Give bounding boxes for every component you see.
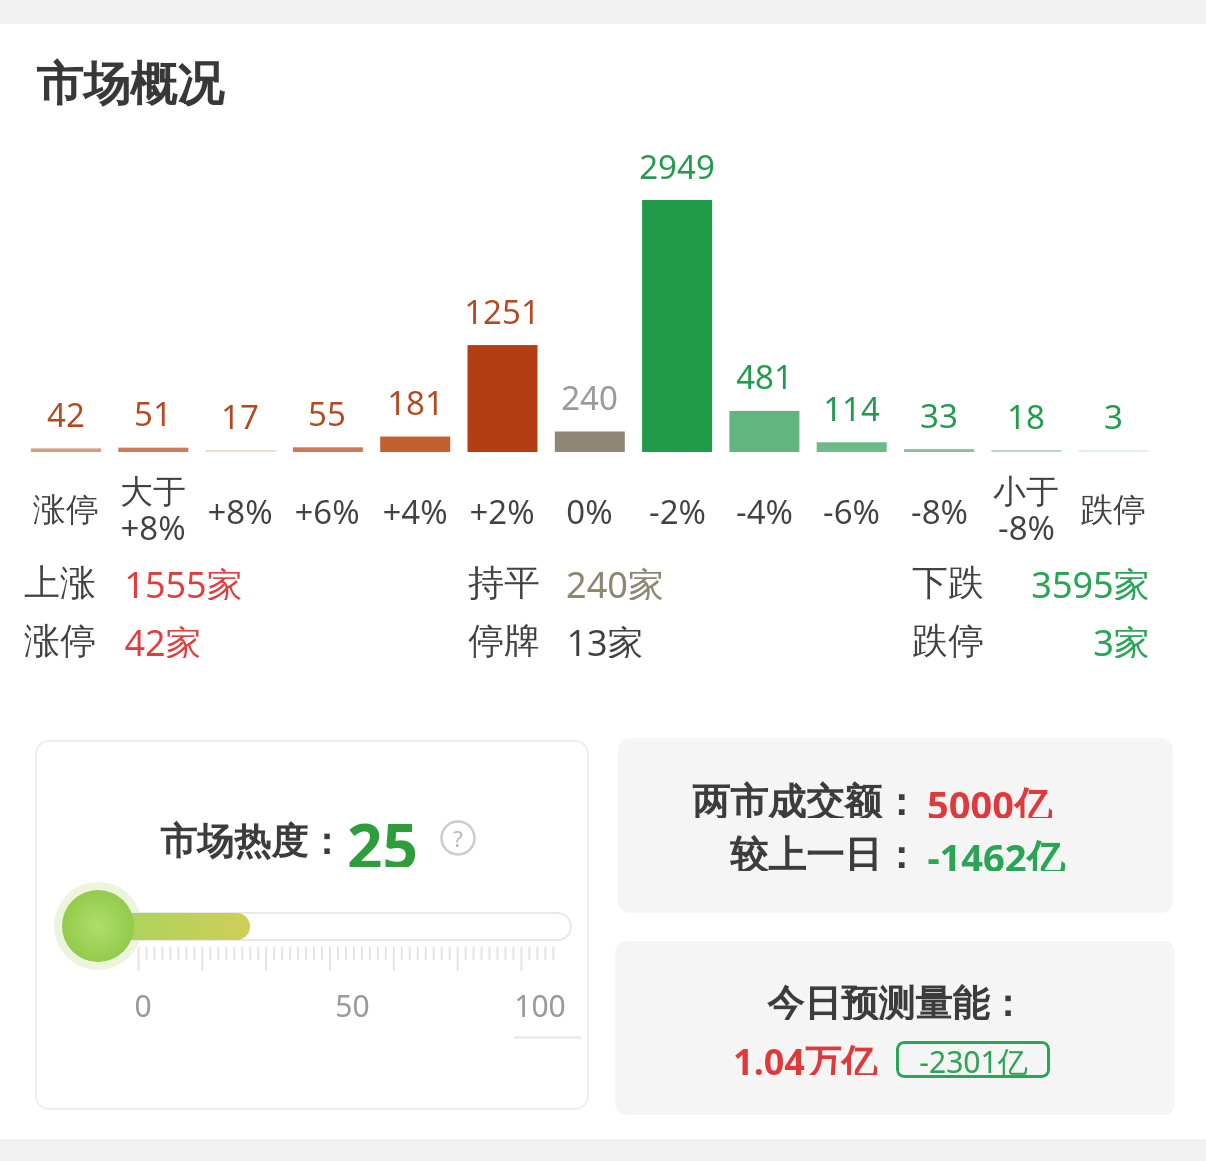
staticText: -8% bbox=[998, 505, 1055, 545]
staticText: 5000亿 bbox=[927, 778, 1052, 818]
staticText: 181 bbox=[387, 380, 444, 416]
staticText: 13家 bbox=[566, 618, 644, 658]
staticText: 跌停 bbox=[912, 618, 984, 658]
staticText: +8% bbox=[120, 505, 186, 545]
staticText: -8% bbox=[911, 489, 968, 529]
staticText: +8% bbox=[207, 489, 273, 529]
staticText: 51 bbox=[134, 391, 172, 427]
button[interactable]: -2301亿 bbox=[896, 1041, 1050, 1078]
staticText: 1251 bbox=[464, 289, 540, 325]
staticText: 240家 bbox=[566, 560, 664, 600]
staticText: 今日预测量能： bbox=[767, 980, 1026, 1020]
staticText: 涨停 bbox=[33, 489, 99, 529]
button[interactable] bbox=[615, 941, 1175, 1115]
staticText: 481 bbox=[736, 354, 793, 390]
staticText: 25 bbox=[347, 803, 418, 867]
staticText: 100 bbox=[514, 985, 566, 1023]
staticText: 42家 bbox=[124, 618, 202, 658]
staticText: 0% bbox=[566, 489, 613, 529]
staticText: +6% bbox=[294, 489, 360, 529]
button[interactable]: ? bbox=[440, 820, 476, 856]
staticText: +4% bbox=[382, 489, 448, 529]
staticText: 下跌 bbox=[912, 560, 984, 600]
staticText: -6% bbox=[823, 489, 880, 529]
staticText: 55 bbox=[308, 391, 346, 427]
staticText: 小于 bbox=[993, 471, 1059, 511]
staticText: 42 bbox=[47, 392, 85, 428]
staticText: -2301亿 bbox=[919, 1041, 1028, 1078]
staticText: 持平 bbox=[468, 560, 540, 600]
staticText: 大于 bbox=[120, 471, 186, 511]
staticText: 两市成交额： bbox=[692, 778, 920, 818]
staticText: 0 bbox=[134, 985, 152, 1023]
staticText: 上涨 bbox=[24, 560, 96, 600]
staticText: -1462亿 bbox=[927, 831, 1065, 871]
staticText: 1.04万亿 bbox=[733, 1037, 877, 1075]
staticText: 240 bbox=[561, 375, 618, 411]
staticText: 1555家 bbox=[124, 560, 243, 600]
staticText: -4% bbox=[736, 489, 793, 529]
staticText: 涨停 bbox=[24, 618, 96, 658]
staticText: ? bbox=[453, 823, 463, 853]
staticText: 17 bbox=[221, 394, 259, 430]
staticText: 停牌 bbox=[468, 618, 540, 658]
staticText: 3 bbox=[1104, 394, 1123, 430]
staticText: 市场概况 bbox=[36, 55, 224, 114]
staticText: 114 bbox=[823, 386, 880, 422]
staticText: 跌停 bbox=[1080, 489, 1146, 529]
staticText: 较上一日： bbox=[730, 831, 920, 871]
staticText: 市场热度： bbox=[160, 818, 345, 862]
staticText: 3595家 bbox=[1031, 560, 1150, 600]
staticText: 3家 bbox=[1093, 618, 1150, 658]
button[interactable] bbox=[35, 740, 589, 1110]
staticText: +2% bbox=[469, 489, 535, 529]
staticText: 18 bbox=[1007, 394, 1045, 430]
staticText: 33 bbox=[920, 393, 958, 429]
staticText: 2949 bbox=[639, 144, 715, 180]
staticText: -2% bbox=[649, 489, 706, 529]
button[interactable] bbox=[618, 738, 1173, 913]
staticText: 50 bbox=[335, 985, 370, 1023]
